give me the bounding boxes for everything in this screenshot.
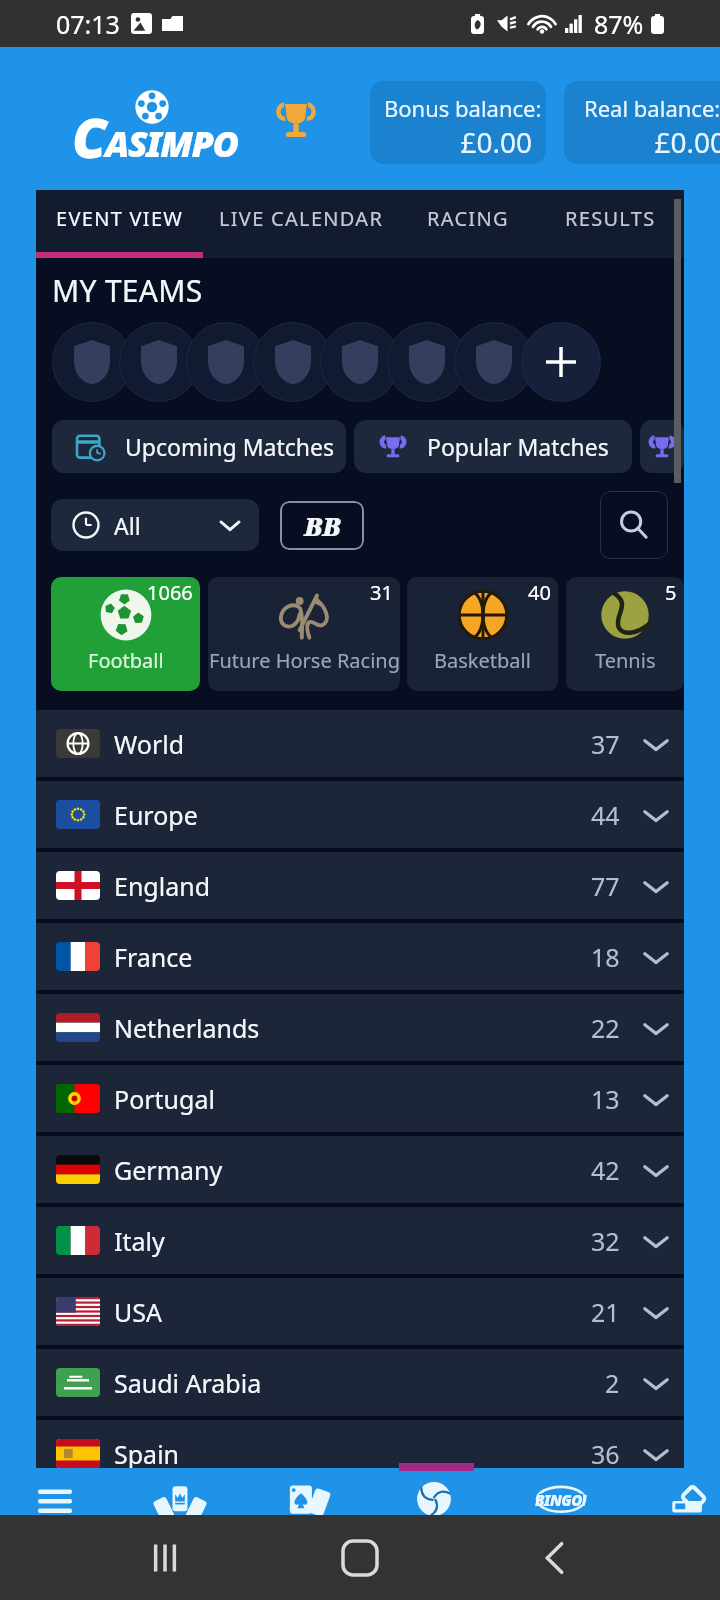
button[interactable]: Sports: [402, 1468, 466, 1515]
button[interactable]: BB: [280, 501, 364, 550]
staticText: Future Horse Racing: [209, 647, 400, 674]
button[interactable]: LIVE CALENDAR: [203, 190, 400, 246]
staticText: 22: [591, 1011, 620, 1045]
button[interactable]: RESULTS: [536, 190, 684, 246]
staticText: RESULTS: [565, 205, 656, 232]
button[interactable]: Spain: [36, 1420, 684, 1487]
button[interactable]: Casino: [144, 1468, 216, 1515]
button[interactable]: Team: [320, 322, 400, 402]
staticText: Real balance:: [584, 93, 720, 123]
staticText: BINGO!: [535, 1490, 586, 1510]
button[interactable]: Back: [525, 1528, 585, 1588]
staticText: 13: [591, 1082, 620, 1116]
staticText: ASIMPO: [105, 119, 238, 168]
staticText: Football: [88, 647, 164, 674]
button[interactable]: USA: [36, 1278, 684, 1345]
button[interactable]: Bingo: [522, 1468, 598, 1515]
button[interactable]: Team: [387, 322, 467, 402]
staticText: 44: [591, 798, 620, 832]
staticText: USA: [114, 1295, 162, 1329]
button[interactable]: Netherlands: [36, 994, 684, 1061]
staticText: World: [114, 727, 185, 761]
staticText: 18: [591, 940, 620, 974]
button[interactable]: Team: [186, 322, 266, 402]
staticText: MY TEAMS: [52, 270, 203, 311]
staticText: England: [114, 869, 211, 903]
button[interactable]: Team: [454, 322, 534, 402]
button[interactable]: Portugal: [36, 1065, 684, 1132]
staticText: £0.00: [578, 123, 720, 153]
staticText: 40: [528, 579, 551, 606]
button[interactable]: Team: [52, 322, 132, 402]
button[interactable]: Team: [253, 322, 333, 402]
staticText: 1066: [147, 579, 193, 606]
staticText: RACING: [427, 205, 509, 232]
button[interactable]: RACING: [400, 190, 536, 246]
staticText: BB: [304, 508, 341, 543]
staticText: Bonus balance:: [384, 93, 532, 123]
button[interactable]: EVENT VIEW: [36, 190, 203, 246]
button[interactable]: Upcoming Matches: [52, 420, 346, 473]
button[interactable]: Casimpo home: [70, 87, 242, 155]
button[interactable]: 1066: [51, 577, 200, 691]
staticText: Spain: [114, 1437, 180, 1471]
button[interactable]: Italy: [36, 1207, 684, 1274]
staticText: 87%: [594, 7, 644, 41]
button[interactable]: Germany: [36, 1136, 684, 1203]
button[interactable]: World: [36, 710, 684, 777]
staticText: EVENT VIEW: [56, 205, 184, 232]
staticText: All: [114, 510, 141, 541]
button[interactable]: Bonus balance:: [370, 81, 546, 164]
button[interactable]: Recents: [135, 1528, 195, 1588]
staticText: C: [72, 99, 107, 167]
button[interactable]: More matches: [640, 420, 684, 473]
staticText: Germany: [114, 1153, 223, 1187]
button[interactable]: Cards: [274, 1468, 340, 1515]
button[interactable]: Add team: [521, 322, 601, 402]
staticText: Tennis: [595, 647, 656, 674]
staticText: Popular Matches: [427, 431, 609, 462]
button[interactable]: Search: [600, 491, 668, 559]
staticText: Upcoming Matches: [125, 431, 334, 462]
staticText: 31: [370, 579, 393, 606]
staticText: 32: [591, 1224, 620, 1258]
button[interactable]: England: [36, 852, 684, 919]
staticText: Basketball: [434, 647, 531, 674]
staticText: 21: [591, 1295, 620, 1329]
staticText: 37: [591, 727, 620, 761]
button[interactable]: Home: [330, 1528, 390, 1588]
button[interactable]: Tournaments: [274, 97, 318, 143]
button[interactable]: All: [51, 499, 259, 551]
button[interactable]: 31: [208, 577, 400, 691]
staticText: 36: [591, 1437, 620, 1471]
staticText: Netherlands: [114, 1011, 260, 1045]
button[interactable]: Popular Matches: [354, 420, 632, 473]
button[interactable]: France: [36, 923, 684, 990]
button[interactable]: Saudi Arabia: [36, 1349, 684, 1416]
staticText: 77: [591, 869, 620, 903]
staticText: £0.00: [384, 123, 532, 153]
staticText: Saudi Arabia: [114, 1366, 262, 1400]
staticText: Italy: [114, 1224, 165, 1258]
staticText: Europe: [114, 798, 198, 832]
button[interactable]: Menu: [24, 1468, 86, 1515]
staticText: 2: [605, 1366, 620, 1400]
button[interactable]: 40: [407, 577, 558, 691]
staticText: LIVE CALENDAR: [219, 205, 384, 232]
staticText: 42: [591, 1153, 620, 1187]
staticText: 07:13: [56, 7, 120, 41]
staticText: 5: [665, 579, 677, 606]
button[interactable]: Real balance:: [564, 81, 720, 164]
button[interactable]: Team: [119, 322, 199, 402]
button[interactable]: Scratch cards: [656, 1468, 720, 1515]
button[interactable]: Europe: [36, 781, 684, 848]
staticText: Portugal: [114, 1082, 215, 1116]
staticText: France: [114, 940, 193, 974]
button[interactable]: 5: [566, 577, 684, 691]
